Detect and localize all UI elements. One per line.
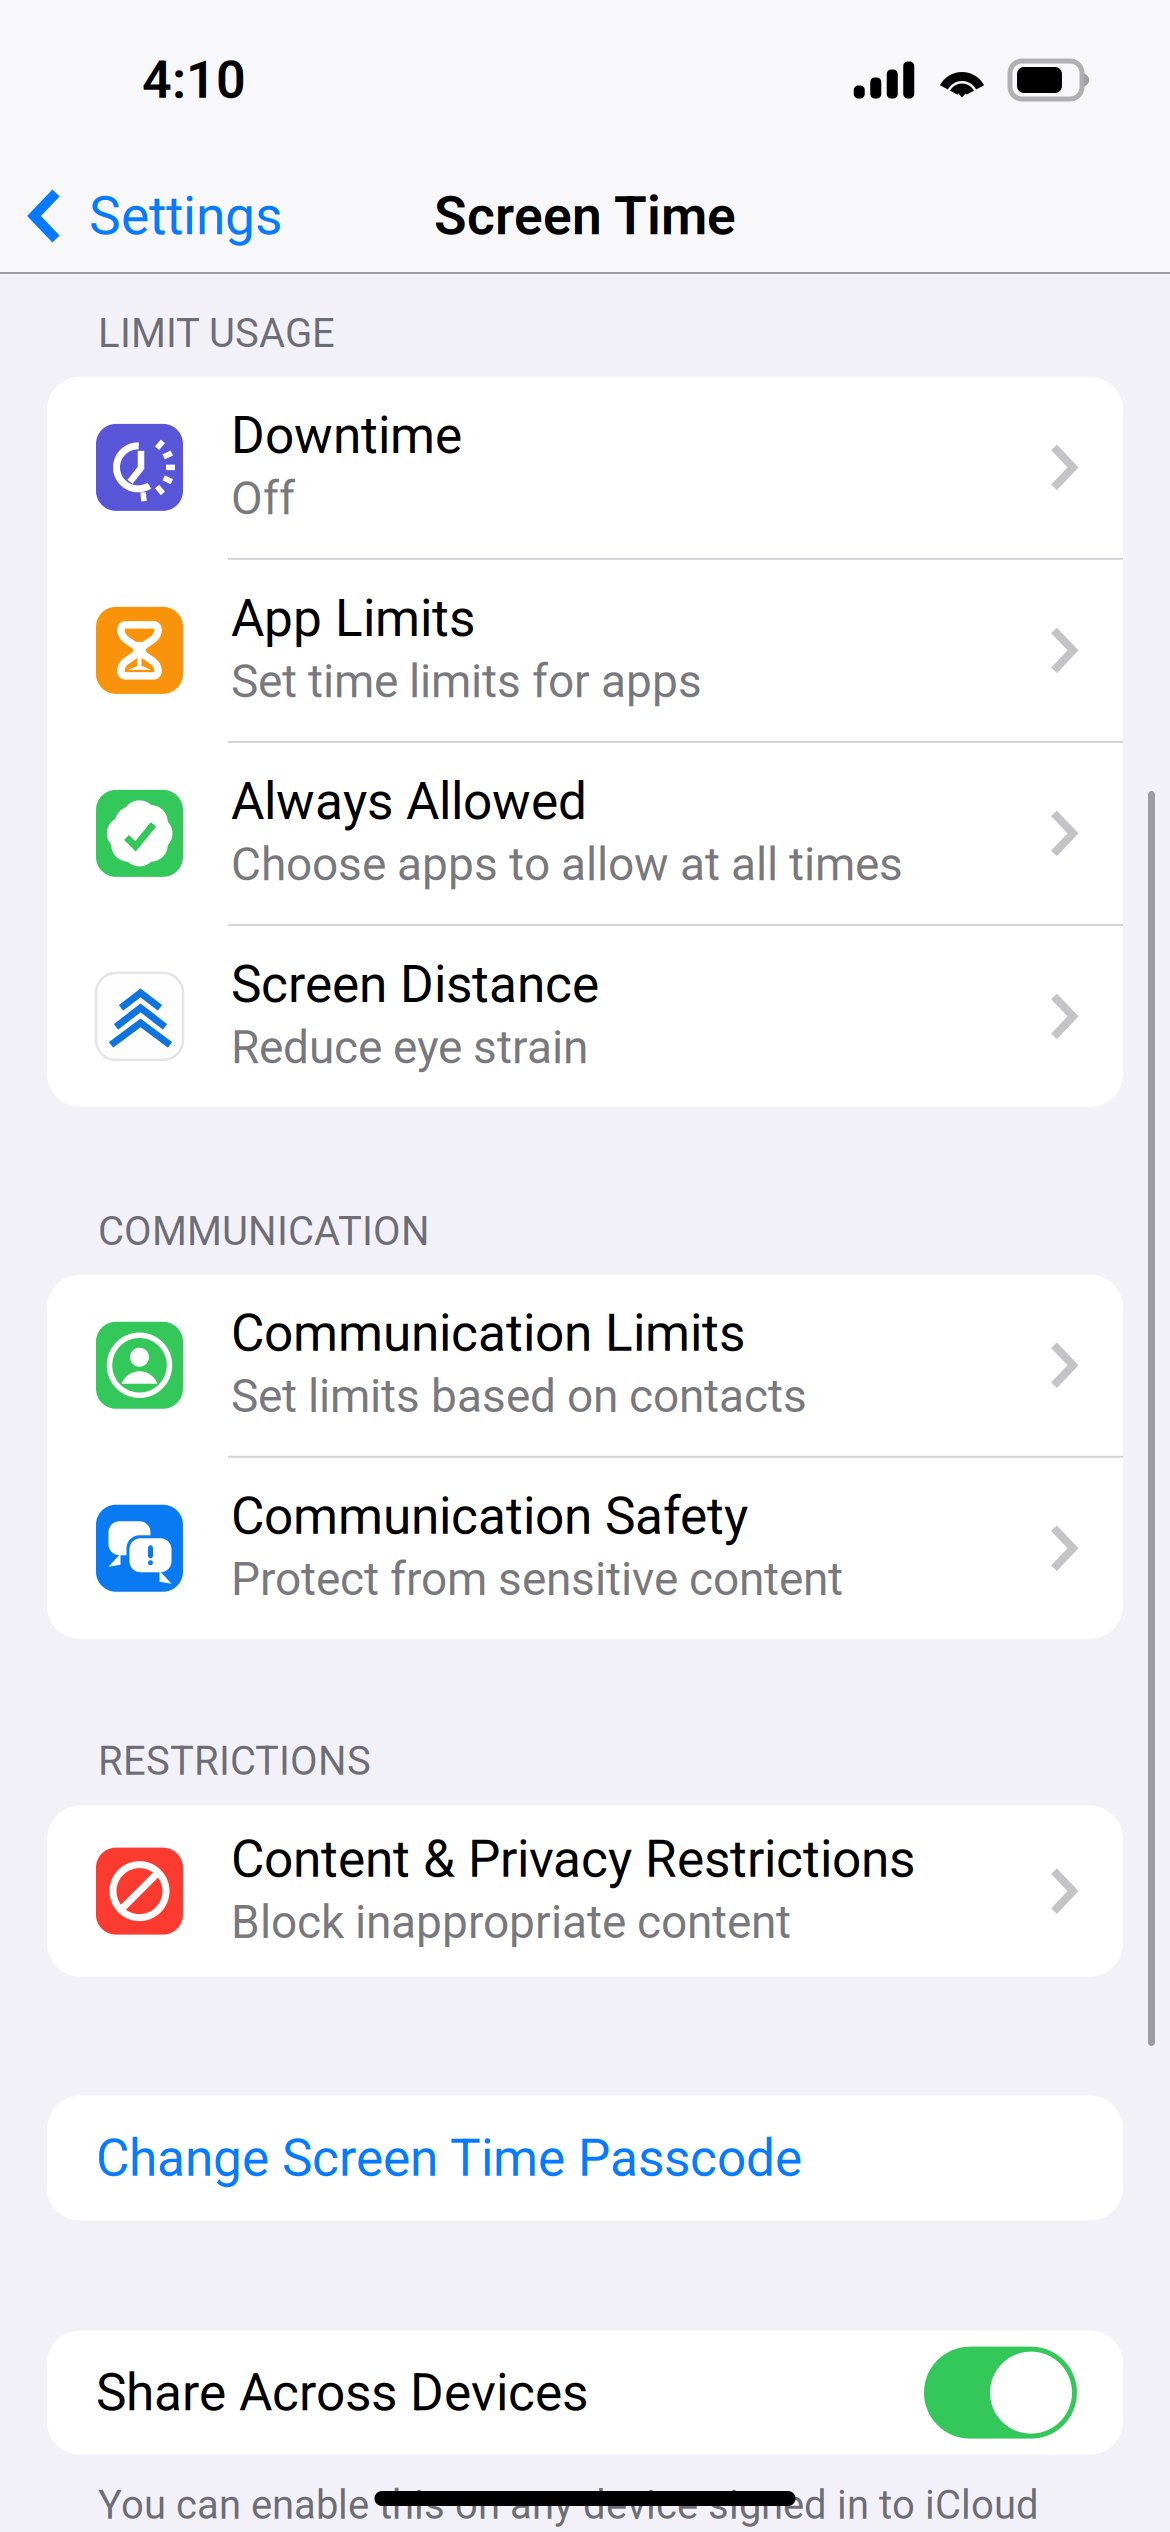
staticText: Content & Privacy Restrictions bbox=[231, 1829, 915, 1889]
button[interactable]: Content & Privacy Restrictions bbox=[47, 1806, 1123, 1977]
button[interactable]: Screen Distance bbox=[47, 926, 1123, 1107]
button[interactable]: Always Allowed bbox=[47, 743, 1123, 924]
staticText: Set time limits for apps bbox=[231, 654, 702, 708]
staticText: LIMIT USAGE bbox=[98, 310, 335, 357]
staticText: Screen Distance bbox=[231, 954, 599, 1014]
staticText: Communication Limits bbox=[231, 1303, 745, 1363]
staticText: RESTRICTIONS bbox=[98, 1738, 371, 1785]
staticText: Set limits based on contacts bbox=[231, 1369, 807, 1423]
staticText: Settings bbox=[89, 185, 283, 247]
button[interactable]: Downtime bbox=[47, 377, 1123, 558]
button[interactable]: Change Screen Time Passcode bbox=[47, 2096, 1123, 2221]
staticText: Block inappropriate content bbox=[231, 1895, 791, 1949]
staticText: Choose apps to allow at all times bbox=[231, 837, 903, 891]
staticText: COMMUNICATION bbox=[98, 1208, 430, 1255]
staticText: Downtime bbox=[231, 405, 462, 465]
staticText: Off bbox=[231, 471, 295, 525]
staticText: App Limits bbox=[231, 588, 475, 648]
staticText: Share Across Devices bbox=[96, 2362, 588, 2423]
button[interactable]: Communication Limits bbox=[47, 1275, 1123, 1456]
button[interactable]: Settings bbox=[0, 165, 283, 267]
staticText: You can enable this on any device signed… bbox=[98, 2482, 1039, 2528]
staticText: Reduce eye strain bbox=[231, 1020, 588, 1074]
button[interactable]: App Limits bbox=[47, 560, 1123, 741]
staticText: 4:10 bbox=[142, 49, 246, 110]
button[interactable]: Communication Safety bbox=[47, 1458, 1123, 1639]
button[interactable]: Share Across Devices bbox=[924, 2347, 1077, 2439]
staticText: Screen Time bbox=[434, 185, 736, 247]
staticText: Communication Safety bbox=[231, 1486, 748, 1546]
staticText: Protect from sensitive content bbox=[231, 1552, 843, 1606]
staticText: Change Screen Time Passcode bbox=[96, 2128, 802, 2188]
staticText: Always Allowed bbox=[231, 771, 587, 831]
